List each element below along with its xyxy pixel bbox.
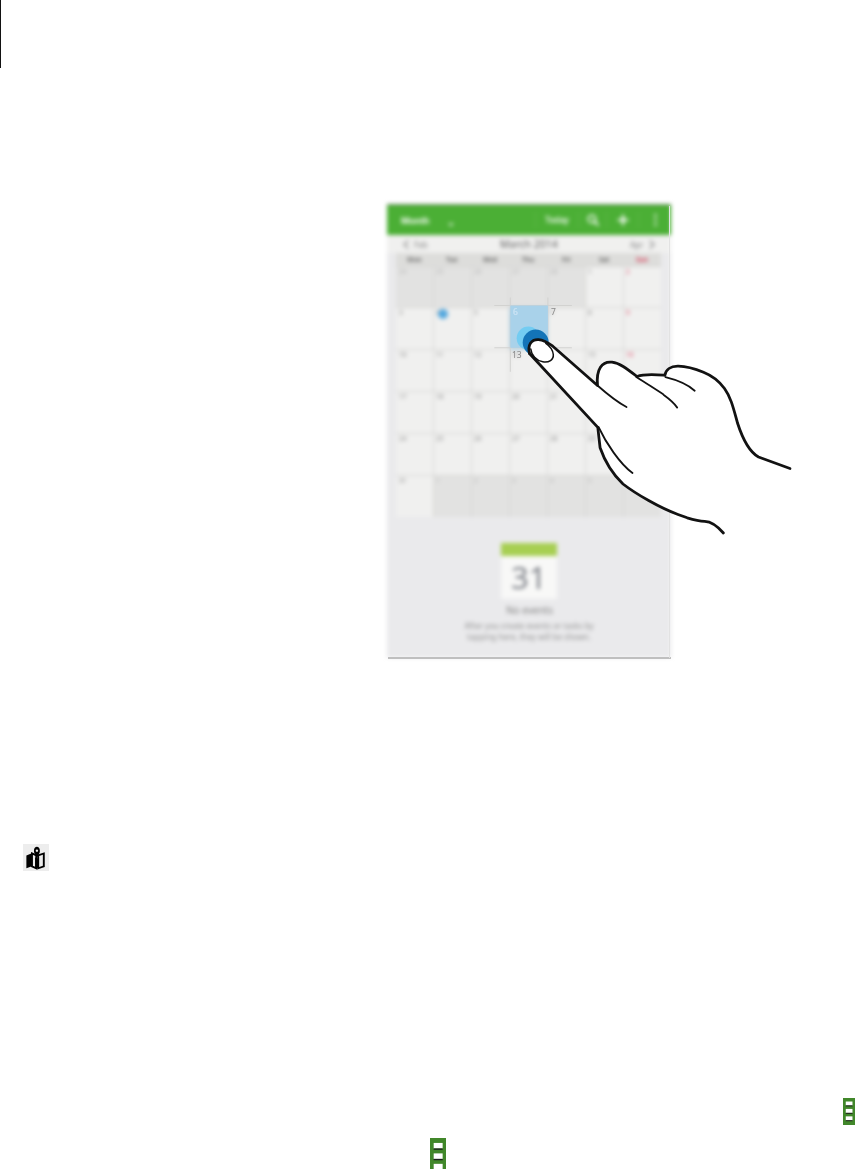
button[interactable]: 23 [623, 391, 661, 433]
staticText: Wed [483, 255, 498, 264]
button[interactable]: 5 [585, 475, 623, 517]
staticText: 3 [399, 308, 403, 317]
button[interactable]: 26 [471, 433, 509, 475]
button[interactable]: 27 [509, 266, 547, 307]
button[interactable]: Map [23, 844, 49, 871]
staticText: 27 [512, 434, 520, 443]
button[interactable]: 24 [396, 433, 433, 475]
button[interactable]: 20 [509, 391, 547, 433]
staticText: 11 [436, 350, 444, 359]
button[interactable]: 7 [547, 307, 585, 349]
button[interactable]: 1 [585, 266, 623, 307]
staticText: 2 [626, 267, 630, 276]
button[interactable]: Apr [620, 236, 671, 253]
staticText: 16 [626, 350, 634, 359]
button[interactable]: 4 [433, 307, 471, 349]
button[interactable]: 12 [471, 349, 509, 391]
button[interactable]: 9 [623, 307, 661, 349]
staticText: 29 [588, 434, 596, 443]
button[interactable]: 27 [509, 433, 547, 475]
staticText: 6 [626, 476, 630, 485]
button[interactable]: 21 [547, 391, 585, 433]
button[interactable]: 29 [585, 433, 623, 475]
button[interactable]: 28 [547, 266, 585, 307]
staticText: 31 [511, 556, 547, 598]
button[interactable]: 22 [585, 391, 623, 433]
staticText: 5 [474, 308, 478, 317]
staticText: 7 [550, 308, 554, 317]
button[interactable]: 18 [433, 391, 471, 433]
staticText: 4 [436, 308, 440, 317]
staticText: Month [401, 214, 430, 226]
staticText: 21 [550, 392, 558, 401]
button[interactable]: 5 [471, 307, 509, 349]
staticText: 9 [626, 308, 630, 317]
button[interactable]: 31 [396, 475, 433, 517]
button[interactable]: More options [639, 205, 671, 235]
staticText: Apr [630, 239, 644, 250]
button[interactable]: 6 [623, 475, 661, 517]
button[interactable]: Today [536, 205, 578, 235]
button[interactable]: 6 [509, 307, 547, 349]
staticText: 8 [588, 308, 592, 317]
staticText: 15 [588, 350, 596, 359]
button[interactable]: 28 [547, 433, 585, 475]
button[interactable]: Add event [607, 205, 638, 235]
staticText: 26 [474, 434, 482, 443]
staticText: Mon [407, 255, 422, 264]
button[interactable]: 14 [547, 349, 585, 391]
button[interactable]: 2 [623, 266, 661, 307]
button[interactable]: Feb [387, 236, 438, 253]
button[interactable]: 15 [585, 349, 623, 391]
staticText: Thu [522, 255, 535, 264]
staticText: Sun [636, 255, 649, 264]
staticText: After you create events or tasks by tapp… [464, 620, 594, 642]
staticText: 10 [399, 350, 407, 359]
button[interactable]: 30 [623, 433, 661, 475]
staticText: 12 [474, 350, 482, 359]
button[interactable]: Month [387, 210, 462, 230]
staticText: Feb [414, 239, 428, 250]
staticText: 25 [436, 434, 444, 443]
staticText: 28 [550, 434, 558, 443]
staticText: 19 [474, 392, 482, 401]
button[interactable]: 19 [471, 391, 509, 433]
button[interactable]: 16 [623, 349, 661, 391]
staticText: 14 [550, 350, 558, 359]
button[interactable]: Search [579, 205, 606, 235]
staticText: 20 [512, 392, 520, 401]
staticText: 13 [512, 349, 522, 361]
button[interactable]: 13 [509, 349, 547, 391]
staticText: 17 [399, 392, 407, 401]
staticText: 1 [588, 267, 592, 276]
button[interactable]: 25 [433, 433, 471, 475]
staticText: Tue [446, 255, 458, 264]
staticText: 13 [512, 350, 520, 359]
staticText: 7 [551, 306, 556, 318]
staticText: 6 [512, 308, 516, 317]
staticText: Today [545, 214, 569, 226]
button[interactable]: 10 [396, 349, 433, 391]
